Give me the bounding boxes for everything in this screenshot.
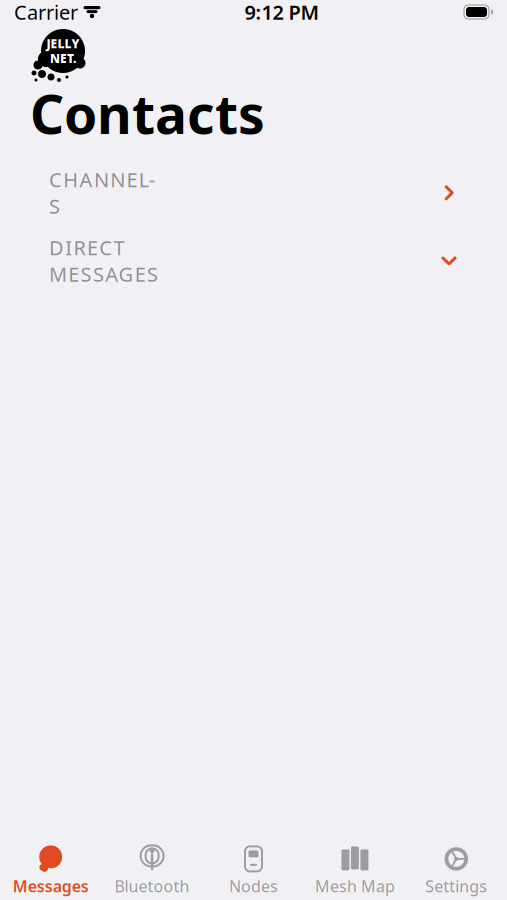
staticText: Settings bbox=[425, 875, 487, 897]
staticText: DIRECT MESSAGES bbox=[49, 234, 158, 287]
staticText: Messages bbox=[13, 875, 89, 897]
staticText: Carrier bbox=[14, 0, 78, 25]
button[interactable]: Mesh Map bbox=[304, 843, 406, 899]
button[interactable]: DIRECT MESSAGES bbox=[0, 239, 507, 283]
button[interactable]: Bluetooth bbox=[101, 843, 203, 899]
button[interactable]: Messages bbox=[0, 843, 101, 899]
staticText: JELLY bbox=[46, 36, 79, 51]
staticText: Nodes bbox=[229, 875, 278, 897]
staticText: Contacts bbox=[30, 78, 265, 149]
staticText: 9:12 PM bbox=[244, 0, 319, 25]
staticText: NET. bbox=[50, 50, 76, 66]
staticText: Mesh Map bbox=[315, 875, 395, 897]
staticText: CHANNELS bbox=[49, 166, 155, 219]
button[interactable]: Nodes bbox=[203, 843, 304, 899]
staticText: Bluetooth bbox=[115, 875, 190, 897]
button[interactable]: Settings bbox=[406, 843, 507, 899]
button[interactable]: CHANNELS bbox=[0, 171, 507, 215]
